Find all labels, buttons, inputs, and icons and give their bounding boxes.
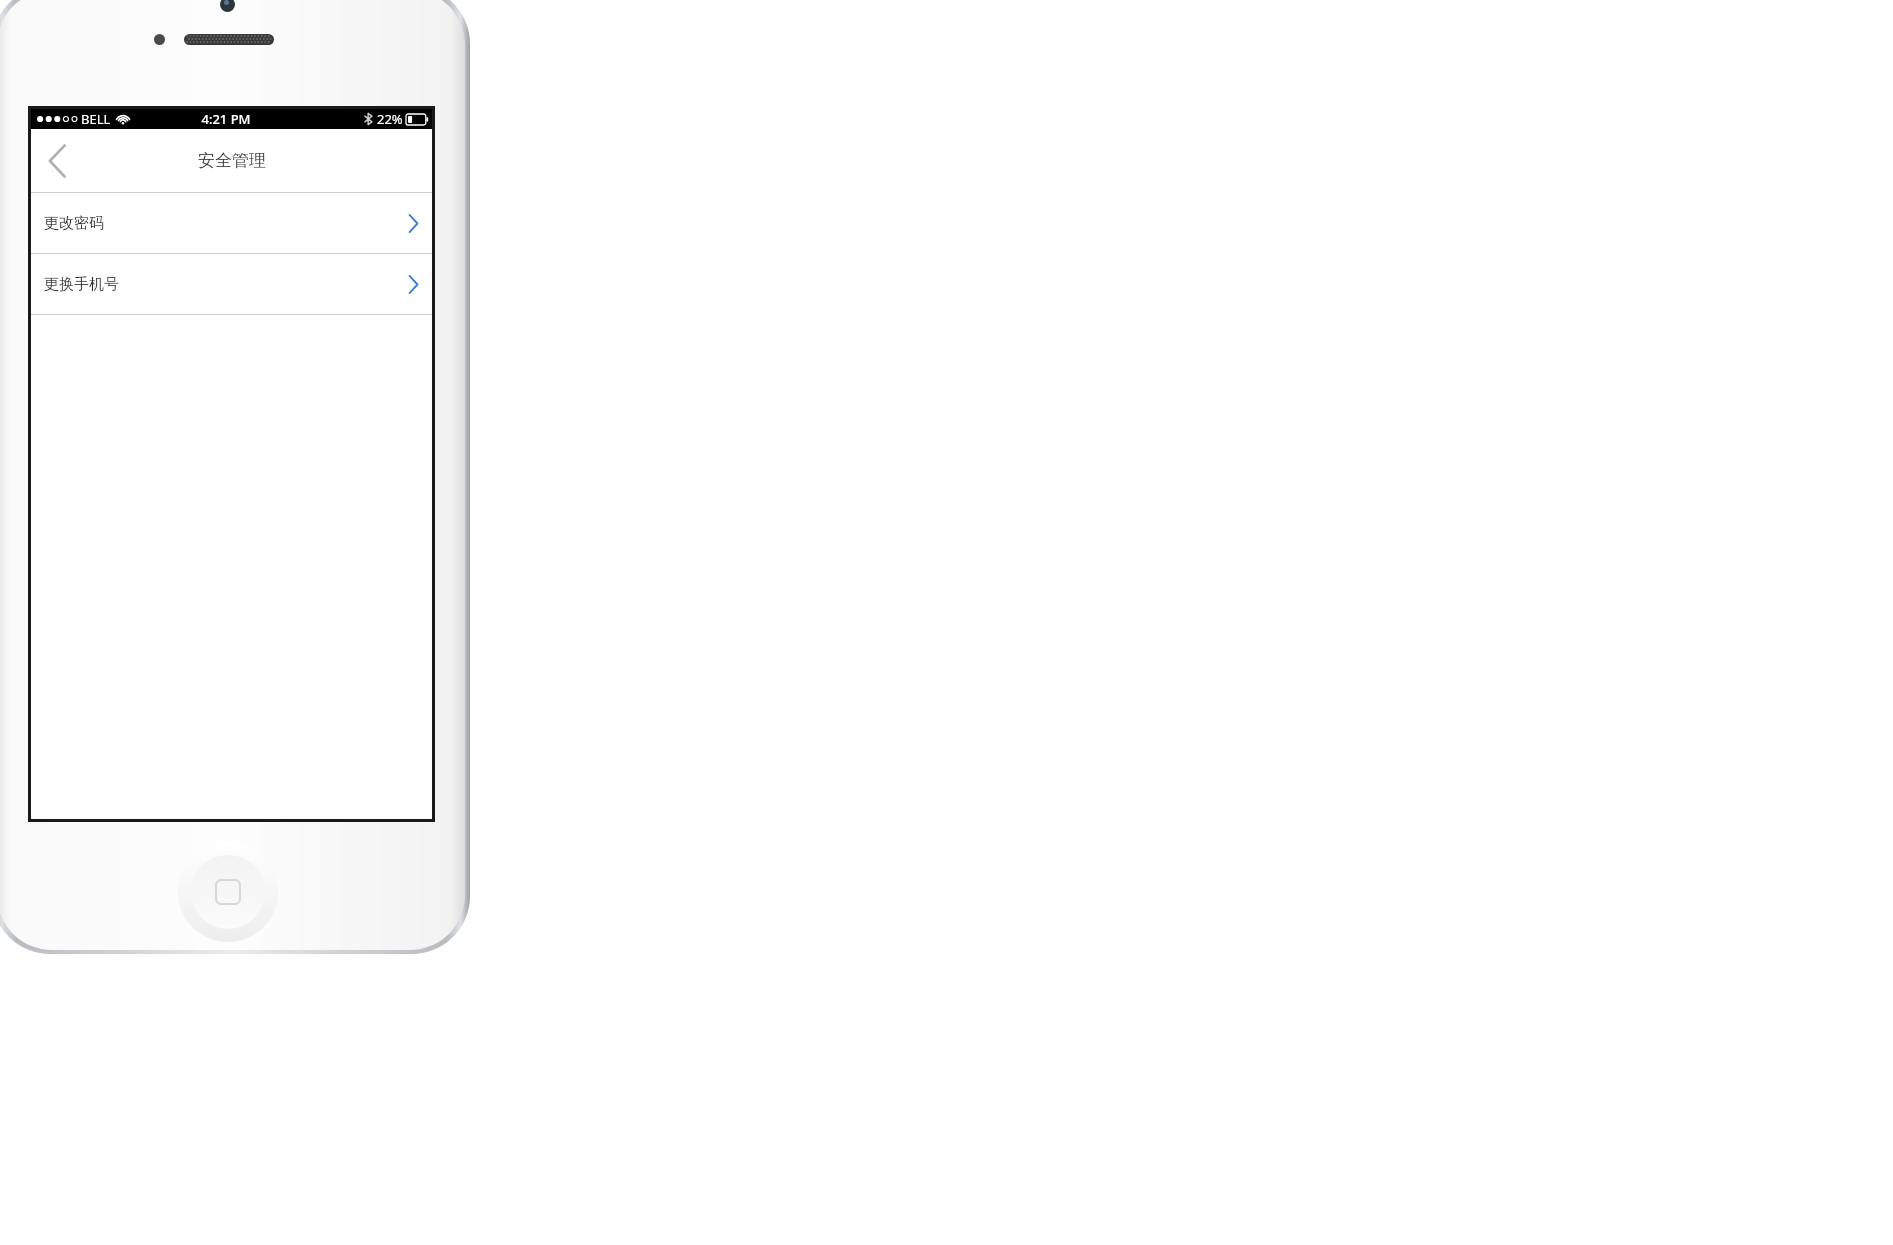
button[interactable]: Back bbox=[31, 129, 83, 192]
staticText: 更改密码 bbox=[44, 214, 104, 233]
staticText: 4:21 PM bbox=[201, 110, 251, 128]
button[interactable]: 更换手机号 bbox=[31, 254, 432, 314]
staticText: 更换手机号 bbox=[44, 275, 119, 294]
button[interactable]: 更改密码 bbox=[31, 193, 432, 253]
staticText: 安全管理 bbox=[198, 150, 266, 171]
staticText: 22% bbox=[377, 110, 403, 128]
staticText: BELL bbox=[81, 110, 111, 128]
button[interactable]: Home bbox=[178, 842, 278, 942]
